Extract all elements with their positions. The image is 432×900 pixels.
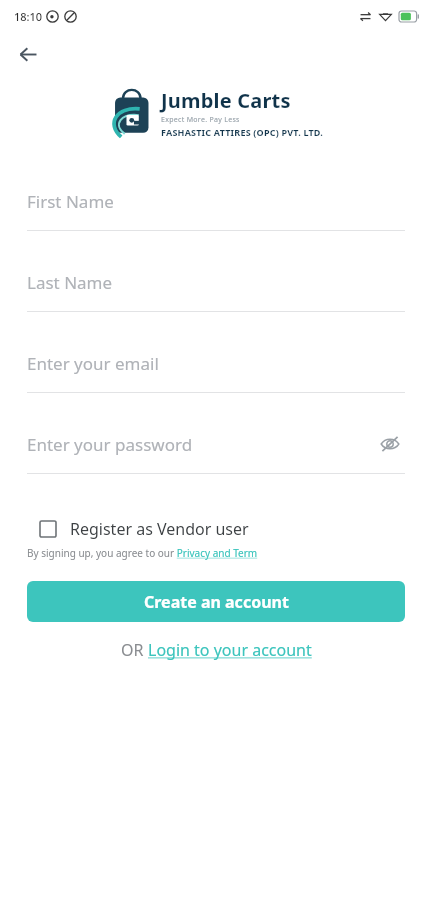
button[interactable]: First Name <box>0 172 432 253</box>
button[interactable]: Back <box>10 36 46 72</box>
button[interactable]: By signing up, you agree to our Privacy … <box>27 546 258 560</box>
button[interactable]: Last Name <box>0 253 432 334</box>
button[interactable]: Register as Vendor user <box>27 518 405 540</box>
button[interactable]: Create an account <box>27 581 405 622</box>
staticText: Jumble Carts <box>161 87 291 114</box>
button[interactable]: Enter your email <box>0 334 432 415</box>
button[interactable]: Login to your account <box>148 639 312 661</box>
staticText: 18:10 <box>14 9 43 24</box>
staticText: Enter your email <box>27 352 159 375</box>
staticText: OR <box>121 639 148 661</box>
staticText: First Name <box>27 190 114 213</box>
staticText: Register as Vendor user <box>70 518 249 540</box>
staticText: Create an account <box>144 591 289 613</box>
staticText: FASHASTIC ATTIRES (OPC) PVT. LTD. <box>161 126 324 138</box>
staticText: Enter your password <box>27 433 193 456</box>
button[interactable]: Enter your password <box>0 415 432 496</box>
staticText: Expect More. Pay Less <box>161 115 240 125</box>
button[interactable]: Show password <box>375 429 405 459</box>
staticText: Last Name <box>27 271 113 294</box>
